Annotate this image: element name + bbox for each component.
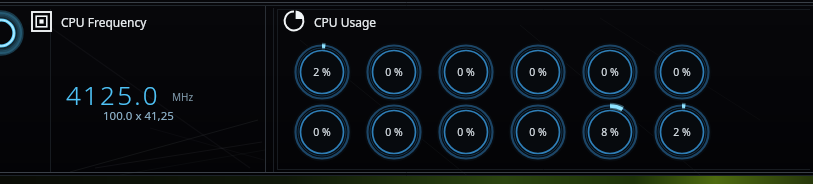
button[interactable]: CPU Usage bbox=[314, 14, 377, 30]
staticText: 0 % bbox=[385, 125, 403, 139]
staticText: 100.0 x 41,25 bbox=[103, 108, 174, 124]
staticText: 0 % bbox=[673, 65, 691, 79]
staticText: 8 % bbox=[601, 125, 619, 139]
staticText: 4125.0 bbox=[66, 77, 160, 112]
button[interactable]: CPU core 4 usage bbox=[510, 44, 566, 100]
staticText: 0 % bbox=[529, 125, 547, 139]
staticText: 0 % bbox=[457, 125, 475, 139]
staticText: MHz bbox=[172, 90, 194, 104]
staticText: 0 % bbox=[457, 65, 475, 79]
button[interactable]: CPU core 1 usage bbox=[294, 44, 350, 100]
button[interactable]: CPU core 6 usage bbox=[654, 44, 710, 100]
button[interactable]: CPU core 9 usage bbox=[438, 104, 494, 160]
staticText: 0 % bbox=[601, 65, 619, 79]
staticText: 2 % bbox=[673, 125, 691, 139]
button[interactable]: CPU core 10 usage bbox=[510, 104, 566, 160]
button[interactable]: CPU core 12 usage bbox=[654, 104, 710, 160]
button[interactable]: CPU Frequency bbox=[61, 14, 147, 30]
button[interactable]: CPU core 7 usage bbox=[294, 104, 350, 160]
button[interactable]: CPU core 5 usage bbox=[582, 44, 638, 100]
staticText: 0 % bbox=[385, 65, 403, 79]
button[interactable]: CPU core 2 usage bbox=[366, 44, 422, 100]
staticText: 2 % bbox=[313, 65, 331, 79]
staticText: 0 % bbox=[529, 65, 547, 79]
button[interactable]: CPU core 11 usage bbox=[582, 104, 638, 160]
button[interactable]: CPU core 8 usage bbox=[366, 104, 422, 160]
staticText: 0 % bbox=[313, 125, 331, 139]
button[interactable]: CPU core 3 usage bbox=[438, 44, 494, 100]
